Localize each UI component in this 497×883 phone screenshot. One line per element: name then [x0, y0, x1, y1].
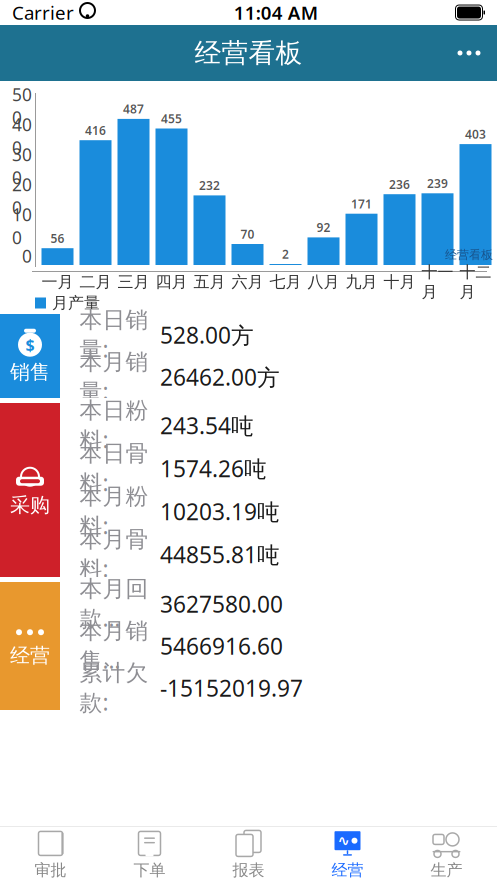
- staticText: 92: [316, 219, 330, 235]
- staticText: -15152019.97: [160, 673, 303, 703]
- staticText: 十一月: [421, 262, 453, 302]
- staticText: 八月: [307, 272, 339, 292]
- staticText: 455: [161, 111, 182, 126]
- button[interactable]: $: [0, 314, 60, 398]
- staticText: 十二月: [459, 262, 491, 302]
- staticText: 10203.19吨: [160, 496, 280, 526]
- staticText: 本月销售…: [79, 617, 148, 675]
- staticText: 5466916.60: [160, 631, 283, 661]
- staticText: 五月: [193, 272, 225, 292]
- button[interactable]: ∿: [298, 827, 397, 883]
- staticText: 200: [12, 173, 32, 219]
- staticText: 审批: [34, 860, 66, 880]
- staticText: 2: [282, 246, 289, 262]
- staticText: 44855.81吨: [160, 539, 280, 569]
- staticText: 56: [50, 230, 64, 246]
- staticText: $: [25, 334, 34, 355]
- staticText: 四月: [155, 272, 187, 292]
- staticText: 本日骨料:: [79, 439, 148, 497]
- staticText: 月产量: [52, 293, 100, 313]
- staticText: 生产: [430, 860, 462, 880]
- staticText: 243.54吨: [160, 410, 254, 440]
- staticText: 经营: [10, 643, 50, 668]
- staticText: 经营看板: [194, 37, 302, 69]
- staticText: 3627580.00: [160, 589, 283, 619]
- staticText: 本月回款…: [79, 575, 148, 633]
- staticText: 500: [12, 83, 32, 129]
- staticText: 三月: [117, 272, 149, 292]
- staticText: 1574.26吨: [160, 453, 267, 483]
- staticText: 300: [12, 143, 32, 189]
- staticText: 经营看板: [445, 247, 493, 262]
- staticText: 416: [85, 122, 106, 138]
- staticText: 二月: [79, 272, 111, 292]
- staticText: 239: [427, 175, 448, 191]
- staticText: 70: [240, 226, 254, 242]
- staticText: 本月粉料:: [79, 482, 148, 540]
- staticText: 经营: [331, 860, 363, 880]
- button[interactable]: 采购: [0, 403, 60, 577]
- staticText: 0: [22, 244, 32, 267]
- button[interactable]: 经营: [0, 582, 60, 710]
- staticText: 26462.00方: [160, 362, 280, 392]
- staticText: 403: [465, 126, 486, 142]
- button[interactable]: 审批: [1, 827, 100, 883]
- staticText: 六月: [231, 272, 263, 292]
- staticText: 销售: [10, 360, 50, 384]
- staticText: 528.00方: [160, 320, 254, 350]
- staticText: 171: [351, 196, 372, 212]
- button[interactable]: 生产: [397, 827, 496, 883]
- staticText: 487: [123, 101, 144, 117]
- staticText: 本月骨料:: [79, 525, 148, 583]
- staticText: 九月: [345, 272, 377, 292]
- button[interactable]: 报表: [199, 827, 298, 883]
- staticText: 累计欠款:: [79, 659, 148, 717]
- button[interactable]: 更多: [441, 31, 497, 75]
- staticText: 236: [389, 176, 410, 192]
- staticText: 11:04 AM: [234, 0, 318, 25]
- staticText: 100: [12, 203, 32, 249]
- staticText: 本日销量:: [79, 306, 148, 364]
- staticText: 下单: [133, 860, 165, 880]
- staticText: 七月: [269, 272, 301, 292]
- staticText: Carrier: [12, 0, 74, 25]
- staticText: 本日粉料:: [79, 396, 148, 454]
- staticText: 一月: [41, 272, 73, 292]
- staticText: 232: [199, 177, 220, 193]
- staticText: ∿: [337, 832, 349, 849]
- staticText: 报表: [232, 860, 264, 880]
- staticText: 本月销量:: [79, 348, 148, 406]
- staticText: 采购: [10, 493, 50, 517]
- staticText: 十月: [383, 272, 415, 292]
- staticText: 400: [12, 113, 32, 159]
- button[interactable]: 下单: [100, 827, 199, 883]
